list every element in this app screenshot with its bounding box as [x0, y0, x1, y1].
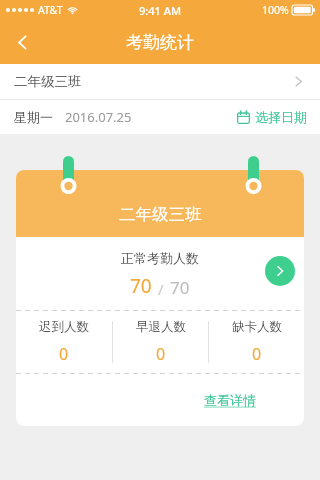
button[interactable]: 迟到人数	[16, 311, 112, 373]
staticText: 0	[59, 343, 69, 365]
staticText: 星期一	[14, 109, 53, 125]
button[interactable]: 二年级三班	[0, 64, 320, 99]
button[interactable]: 早退人数	[113, 311, 208, 373]
button[interactable]: 查看详情	[204, 392, 256, 408]
staticText: 100%	[262, 3, 289, 17]
staticText: 迟到人数	[39, 319, 89, 335]
staticText: 查看详情	[204, 392, 256, 408]
button[interactable]: 缺卡人数	[209, 311, 304, 373]
staticText: 9:41 AM	[139, 3, 182, 18]
staticText: 考勤统计	[126, 32, 194, 53]
staticText: AT&T	[38, 3, 63, 17]
button[interactable]: Back	[0, 20, 44, 64]
staticText: 正常考勤人数	[121, 250, 199, 266]
staticText: 二年级三班	[14, 73, 82, 90]
staticText: 70	[170, 276, 190, 299]
staticText: 二年级三班	[119, 204, 202, 225]
button[interactable]: 查看详情	[265, 256, 295, 286]
staticText: /	[158, 279, 164, 299]
staticText: 选择日期	[255, 109, 307, 125]
staticText: 70	[130, 273, 152, 299]
button[interactable]: 选择日期	[235, 105, 309, 129]
staticText: 2016.07.25	[65, 108, 132, 126]
staticText: 0	[252, 343, 262, 365]
staticText: 早退人数	[136, 319, 186, 335]
staticText: 0	[156, 343, 166, 365]
staticText: 缺卡人数	[232, 319, 282, 335]
